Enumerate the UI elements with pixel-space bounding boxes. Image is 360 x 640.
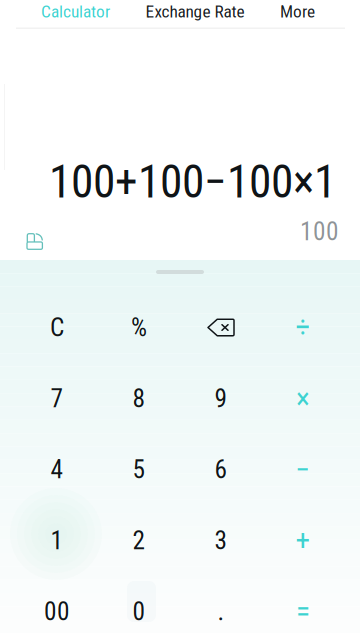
staticText: − <box>295 452 310 487</box>
button[interactable]: 00 <box>16 576 98 640</box>
staticText: 7 <box>50 384 63 413</box>
button[interactable]: More <box>280 1 315 22</box>
staticText: = <box>296 594 310 629</box>
button[interactable]: ÷ <box>262 292 344 363</box>
staticText: 4 <box>50 455 63 484</box>
staticText: 3 <box>214 526 227 555</box>
staticText: + <box>295 523 310 558</box>
button[interactable]: 7 <box>16 363 98 434</box>
staticText: 5 <box>132 455 145 484</box>
staticText: C <box>50 313 64 342</box>
button[interactable]: Exchange Rate <box>145 1 244 22</box>
button[interactable]: 4 <box>16 434 98 505</box>
staticText: 8 <box>132 384 145 413</box>
staticText: Calculator <box>41 1 110 22</box>
staticText: . <box>217 597 224 626</box>
staticText: 1 <box>50 526 63 555</box>
button[interactable]: 3 <box>180 505 262 576</box>
button[interactable]: 1 <box>16 505 98 576</box>
staticText: % <box>131 313 147 342</box>
button[interactable]: + <box>262 505 344 576</box>
staticText: × <box>296 381 310 416</box>
staticText: More <box>280 1 315 22</box>
button[interactable]: − <box>262 434 344 505</box>
staticText: 9 <box>214 384 227 413</box>
button[interactable]: 9 <box>180 363 262 434</box>
button[interactable]: C <box>16 292 98 363</box>
button[interactable]: 2 <box>98 505 180 576</box>
staticText: 0 <box>132 597 145 626</box>
button[interactable]: 5 <box>98 434 180 505</box>
staticText: 100 <box>300 217 339 246</box>
button[interactable]: % <box>98 292 180 363</box>
staticText: 00 <box>44 597 70 626</box>
button[interactable]: 0 <box>98 576 180 640</box>
staticText: Exchange Rate <box>145 1 244 22</box>
staticText: ÷ <box>295 310 310 345</box>
button[interactable]: = <box>262 576 344 640</box>
button[interactable]: 8 <box>98 363 180 434</box>
staticText: 2 <box>132 526 145 555</box>
button[interactable]: 6 <box>180 434 262 505</box>
staticText: 6 <box>214 455 227 484</box>
button[interactable]: Save <box>21 228 48 255</box>
button[interactable]: Backspace <box>180 292 262 363</box>
button[interactable]: Calculator <box>41 1 110 22</box>
staticText: 100+100−100×1 <box>49 155 336 208</box>
button[interactable]: . <box>180 576 262 640</box>
button[interactable]: × <box>262 363 344 434</box>
